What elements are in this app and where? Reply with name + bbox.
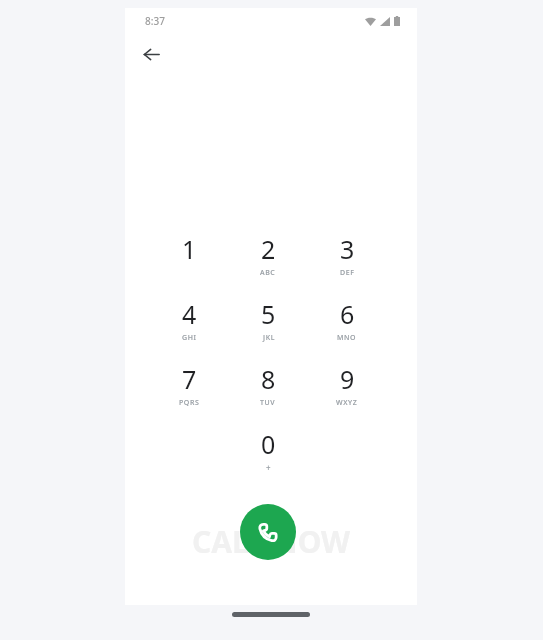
staticText: + [266,462,272,473]
staticText: PQRS [179,398,200,408]
button[interactable]: 4 [154,297,224,355]
staticText: 7 [182,362,197,396]
button[interactable]: Back [131,34,171,74]
staticText: 8:37 [145,14,165,28]
staticText: 0 [261,427,276,461]
button[interactable]: 8 [233,362,303,420]
button[interactable]: Call [240,504,296,560]
staticText: GHI [182,333,197,343]
button[interactable]: 0 [233,427,303,485]
staticText: JKL [263,333,275,343]
staticText: 9 [340,362,355,396]
button[interactable]: 3 [312,232,382,290]
button[interactable]: 6 [312,297,382,355]
staticText: TUV [260,398,276,408]
staticText: MNO [337,333,357,343]
staticText: 4 [182,297,197,331]
button[interactable]: 7 [154,362,224,420]
staticText: WXYZ [336,398,358,408]
staticText: CALL NOW [163,521,379,562]
staticText: 1 [182,232,197,266]
staticText: 3 [340,232,355,266]
staticText: 2 [261,232,276,266]
staticText: 5 [261,297,276,331]
staticText: 8 [261,362,276,396]
staticText: ABC [260,268,276,278]
button[interactable]: 5 [233,297,303,355]
button[interactable]: 2 [233,232,303,290]
button[interactable]: 1 [154,232,224,290]
staticText: DEF [340,268,355,278]
staticText: 6 [340,297,355,331]
button[interactable]: 9 [312,362,382,420]
